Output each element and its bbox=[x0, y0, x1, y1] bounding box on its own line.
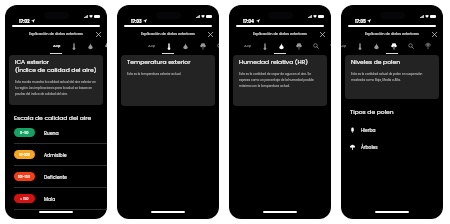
staticText: 17:05 bbox=[355, 18, 366, 24]
staticText: Árboles bbox=[361, 144, 378, 150]
button[interactable]: AQI bbox=[341, 41, 351, 55]
button[interactable]: Cerrar bbox=[429, 29, 439, 39]
button[interactable]: Temperatura bbox=[65, 41, 82, 55]
other: Visibilidad bbox=[408, 43, 414, 49]
other: Temperatura bbox=[358, 43, 362, 50]
button[interactable]: Árboles bbox=[341, 138, 443, 155]
staticText: Explicación de datos exteriores bbox=[253, 31, 307, 36]
button[interactable]: Polen bbox=[194, 41, 211, 55]
staticText: 17:03 bbox=[131, 18, 142, 24]
button[interactable]: AQI bbox=[143, 41, 160, 55]
staticText: AQI bbox=[148, 43, 156, 49]
staticText: Esta escala muestra la calidad actual de… bbox=[15, 80, 96, 96]
button[interactable]: AQI bbox=[48, 41, 65, 55]
other: Temperatura bbox=[263, 43, 267, 50]
staticText: 0-50 bbox=[20, 130, 29, 135]
button[interactable]: 101-150 bbox=[5, 166, 107, 187]
staticText: Deficiente bbox=[44, 174, 67, 180]
other: Temperatura bbox=[167, 43, 171, 50]
other: Polen bbox=[296, 43, 302, 50]
staticText: > 150 bbox=[20, 196, 29, 201]
staticText: Esta es la cantidad actual de polen en s… bbox=[351, 72, 423, 82]
staticText: Temperatura exterior bbox=[127, 58, 191, 66]
staticText: AQI bbox=[341, 43, 347, 49]
button[interactable]: Temperatura bbox=[160, 41, 177, 55]
button[interactable]: Polen bbox=[99, 41, 107, 55]
staticText: AQI bbox=[244, 43, 252, 49]
other: Árbol bbox=[425, 43, 431, 49]
other: Polen bbox=[391, 43, 397, 50]
button[interactable]: Cerrar bbox=[205, 29, 215, 39]
staticText: 17:04 bbox=[243, 18, 255, 24]
button[interactable]: Árbol bbox=[324, 41, 331, 55]
staticText: ICA exterior (Índice de calidad del aire… bbox=[15, 58, 97, 74]
button[interactable]: Temperatura bbox=[351, 41, 368, 55]
staticText: Humedad relativa (HR) bbox=[239, 58, 309, 66]
button[interactable]: Humedad bbox=[177, 41, 194, 55]
button[interactable]: 0-50 bbox=[5, 122, 107, 143]
staticText: Niveles de polen bbox=[351, 58, 401, 66]
staticText: Tipos de polen bbox=[350, 108, 394, 116]
staticText: Escala de calidad del aire bbox=[14, 114, 92, 122]
other: Humedad bbox=[374, 43, 379, 50]
button[interactable]: Humedad bbox=[368, 41, 385, 55]
staticText: Buena bbox=[44, 130, 59, 136]
staticText: Explicación de datos exteriores bbox=[29, 31, 83, 36]
other: Humedad bbox=[88, 43, 93, 50]
staticText: Esta es la temperatura exterior actual. bbox=[127, 72, 182, 76]
other: Árbol bbox=[330, 43, 331, 49]
button[interactable]: Hierba bbox=[341, 121, 443, 138]
button[interactable]: Humedad bbox=[273, 41, 290, 55]
button[interactable]: > 150 bbox=[5, 188, 107, 209]
button[interactable]: AQI bbox=[239, 41, 256, 55]
staticText: Explicación de datos exteriores bbox=[365, 31, 419, 36]
other: Visibilidad bbox=[313, 43, 319, 49]
staticText: 17:02 bbox=[19, 18, 30, 24]
button[interactable]: Visibilidad bbox=[211, 41, 219, 55]
button[interactable]: Cerrar bbox=[93, 29, 103, 39]
button[interactable]: Visibilidad bbox=[402, 41, 419, 55]
staticText: Admisible bbox=[44, 152, 67, 158]
button[interactable]: Cerrar bbox=[317, 29, 327, 39]
staticText: Explicación de datos exteriores bbox=[141, 31, 195, 36]
other: Polen bbox=[105, 43, 107, 50]
other: Polen bbox=[200, 43, 206, 50]
staticText: 51-100 bbox=[19, 152, 30, 157]
other: Visibilidad bbox=[217, 43, 219, 49]
other: Humedad bbox=[183, 43, 188, 50]
other: Temperatura bbox=[72, 43, 76, 50]
staticText: Esta es la cantidad de vapor de agua en … bbox=[239, 72, 314, 88]
staticText: Hierba bbox=[361, 127, 376, 133]
button[interactable]: Árbol bbox=[419, 41, 436, 55]
button[interactable]: Temperatura bbox=[256, 41, 273, 55]
other: Humedad bbox=[279, 43, 284, 50]
button[interactable]: Polen bbox=[290, 41, 307, 55]
button[interactable]: Humedad bbox=[82, 41, 99, 55]
button[interactable]: Visibilidad bbox=[307, 41, 324, 55]
button[interactable]: Polen bbox=[385, 41, 402, 55]
button[interactable]: 51-100 bbox=[5, 144, 107, 165]
staticText: Mala bbox=[44, 196, 56, 202]
staticText: AQI bbox=[53, 43, 61, 49]
staticText: 101-150 bbox=[18, 174, 31, 179]
